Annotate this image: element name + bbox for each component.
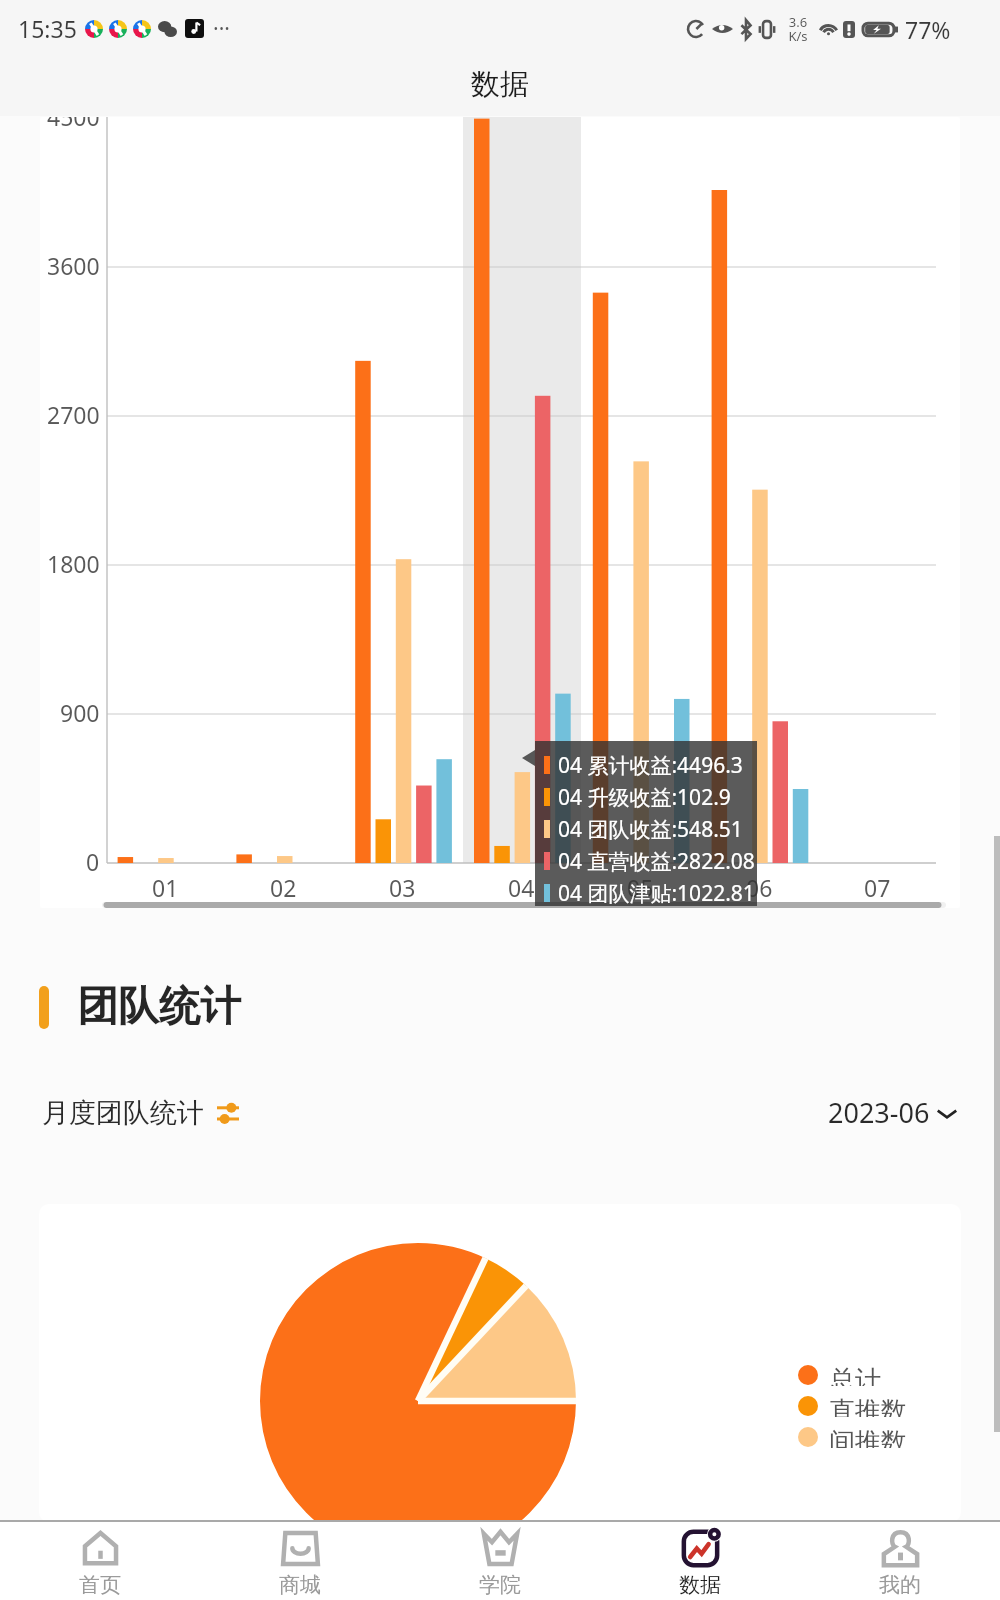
staticText: 我的 (879, 1572, 921, 1598)
staticText: 02 (270, 872, 297, 903)
staticText: 数据 (679, 1572, 721, 1598)
button[interactable]: Filter (216, 1100, 240, 1126)
staticText: 3600 (47, 250, 100, 281)
staticText: 04 直营收益:2822.08 (558, 847, 755, 876)
button[interactable]: 首页 (0, 1522, 200, 1600)
staticText: 1800 (47, 548, 100, 579)
staticText: 数据 (471, 66, 529, 103)
staticText: 04 团队津贴:1022.81 (558, 879, 755, 908)
staticText: 04 累计收益:4496.3 (558, 751, 743, 780)
staticText: 4500 (47, 117, 100, 132)
staticText: 直推数 (829, 1395, 907, 1417)
staticText: 04 升级收益:102.9 (558, 783, 731, 812)
staticText: 2700 (47, 399, 100, 430)
staticText: 间推数 (829, 1426, 907, 1448)
button[interactable]: 数据 (600, 1522, 800, 1600)
staticText: 03 (389, 872, 416, 903)
staticText: 学院 (479, 1572, 521, 1598)
staticText: 01 (152, 872, 179, 903)
button[interactable]: 学院 (400, 1522, 600, 1600)
button[interactable]: 2023-06 (828, 1094, 958, 1131)
button[interactable]: 商城 (200, 1522, 400, 1600)
button[interactable]: 我的 (800, 1522, 1000, 1600)
staticText: 05 (627, 872, 654, 903)
staticText: 总计 (829, 1364, 881, 1386)
staticText: 07 (864, 872, 891, 903)
staticText: 77% (905, 14, 951, 45)
staticText: 商城 (279, 1572, 321, 1598)
staticText: 15:35 (18, 13, 77, 44)
staticText: 06 (746, 872, 773, 903)
staticText: 2023-06 (828, 1094, 930, 1131)
staticText: 3.6 K/s (788, 13, 808, 45)
staticText: 04 (508, 872, 535, 903)
staticText: 团队统计 (77, 981, 241, 1033)
staticText: 月度团队统计 (42, 1096, 204, 1130)
staticText: 0 (86, 846, 100, 877)
staticText: 900 (60, 697, 100, 728)
staticText: ··· (213, 14, 230, 43)
staticText: 04 团队收益:548.51 (558, 815, 743, 844)
staticText: 首页 (79, 1572, 121, 1598)
